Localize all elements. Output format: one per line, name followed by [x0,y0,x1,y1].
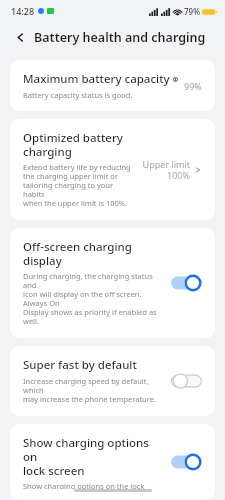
staticText: 79% [184,6,200,17]
button[interactable]: Off-screen charging display [10,228,215,338]
staticText: Upper limit 100% [142,158,190,181]
staticText: Battery health and charging [34,29,206,46]
staticText: Off-screen charging display [23,239,163,268]
button[interactable]: Maximum battery capacity [10,60,215,111]
button[interactable]: Off [171,372,202,390]
staticText: 14:28 [11,5,35,17]
staticText: Extend battery life by reducing the char… [23,162,136,209]
button[interactable]: Super fast by default [10,346,215,416]
staticText: Increase charging speed by default, whic… [23,376,163,405]
staticText: Maximum battery capacity [23,71,170,87]
button[interactable]: Show charging options on lock screen [10,424,215,500]
button[interactable]: Back [9,26,31,48]
staticText: Super fast by default [23,357,137,373]
staticText: 99% [184,80,202,92]
staticText: Optimized battery charging [23,130,123,159]
staticText: Show charging options on the lock screen… [23,481,163,489]
staticText: During charging, the charging status and… [23,271,163,327]
button[interactable]: On [171,274,202,292]
button[interactable]: Optimized battery charging [10,119,215,220]
button[interactable]: On [171,453,202,471]
staticText: Show charging options on lock screen [23,435,163,478]
staticText: Battery capacity status is good. [23,90,133,100]
